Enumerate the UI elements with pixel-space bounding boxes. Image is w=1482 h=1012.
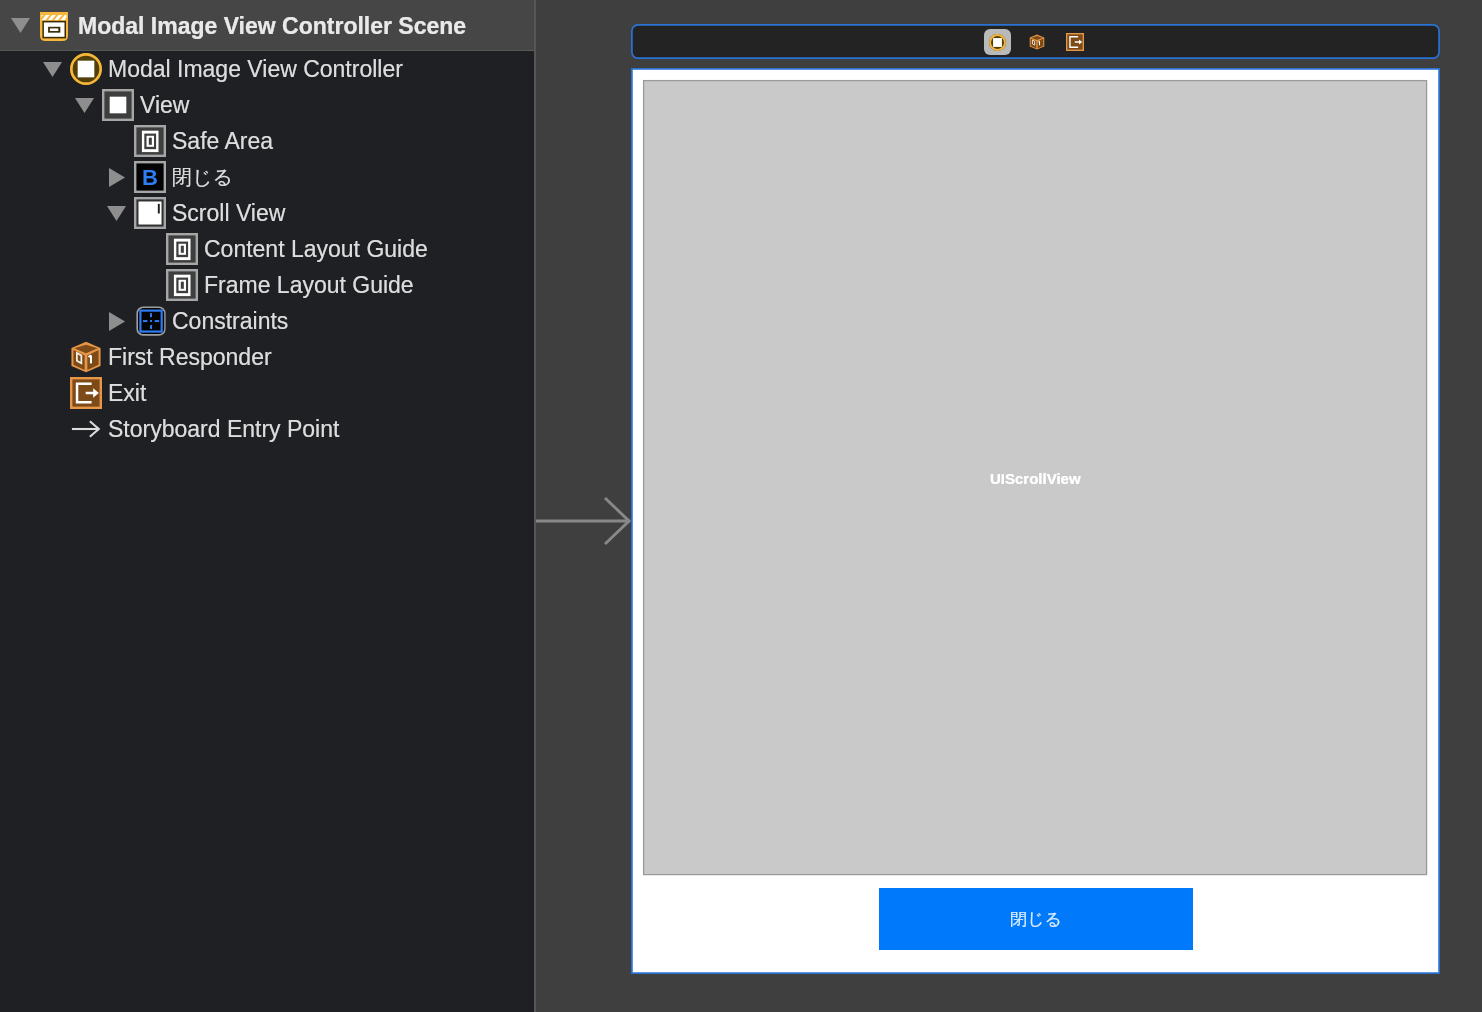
staticText: B [142,165,158,190]
staticText: Scroll View [172,200,286,226]
staticText: First Responder [108,344,272,370]
staticText: View [140,92,190,118]
staticText: UIScrollView [990,470,1081,487]
staticText: Exit [108,380,147,406]
staticText: Safe Area [172,128,274,154]
button[interactable]: Frame Layout Guide [0,267,534,303]
button[interactable]: Safe Area [0,123,534,159]
button[interactable]: View [0,87,534,123]
button[interactable]: Modal Image View Controller Scene [0,0,534,51]
button[interactable]: B [0,159,534,195]
button[interactable]: Modal Image View Controller [0,51,534,87]
button[interactable]: View controller [984,29,1011,55]
staticText: 閉じる [172,165,233,190]
button[interactable]: Scroll View [0,195,534,231]
button[interactable]: Exit [1061,29,1088,55]
staticText: Modal Image View Controller Scene [78,13,467,39]
staticText: 閉じる [1010,909,1062,930]
staticText: Modal Image View Controller [108,56,403,82]
button[interactable]: Storyboard Entry Point [0,411,534,447]
staticText: Constraints [172,308,289,334]
button[interactable]: First Responder [0,339,534,375]
button[interactable]: Exit [0,375,534,411]
button[interactable]: Constraints [0,303,534,339]
button[interactable]: View controller [632,25,1439,58]
staticText: Frame Layout Guide [204,272,414,298]
staticText: Storyboard Entry Point [108,416,340,442]
staticText: Content Layout Guide [204,236,428,262]
button[interactable]: 閉じる [879,888,1193,950]
button[interactable]: First responder [1023,29,1050,55]
button[interactable]: Content Layout Guide [0,231,534,267]
